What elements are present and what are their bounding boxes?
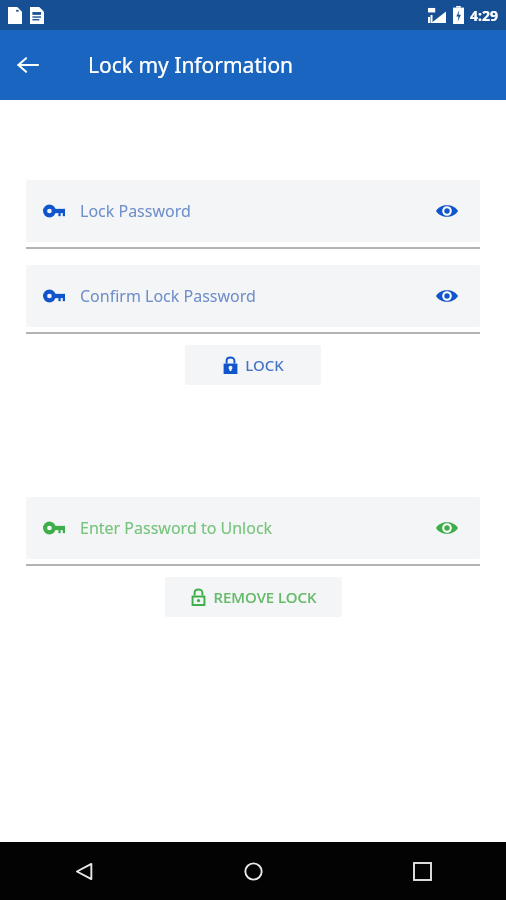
- staticText: Lock my Information: [88, 51, 294, 80]
- button[interactable]: Show password: [432, 513, 462, 543]
- staticText: 4:29: [470, 6, 498, 25]
- button[interactable]: Confirm Lock Password: [26, 265, 480, 327]
- button[interactable]: Show password: [432, 281, 462, 311]
- button[interactable]: Recent apps: [398, 847, 446, 895]
- staticText: Enter Password to Unlock: [80, 517, 432, 539]
- staticText: Confirm Lock Password: [80, 285, 432, 307]
- staticText: Lock Password: [80, 200, 432, 222]
- button[interactable]: REMOVE LOCK: [165, 577, 342, 617]
- button[interactable]: Enter Password to Unlock: [26, 497, 480, 559]
- button[interactable]: Home: [229, 847, 277, 895]
- button[interactable]: Show password: [432, 196, 462, 226]
- staticText: REMOVE LOCK: [213, 587, 317, 607]
- button[interactable]: LOCK: [185, 345, 321, 385]
- staticText: LOCK: [245, 355, 284, 375]
- button[interactable]: Lock Password: [26, 180, 480, 242]
- button[interactable]: Back: [60, 847, 108, 895]
- button[interactable]: Back: [0, 37, 56, 93]
